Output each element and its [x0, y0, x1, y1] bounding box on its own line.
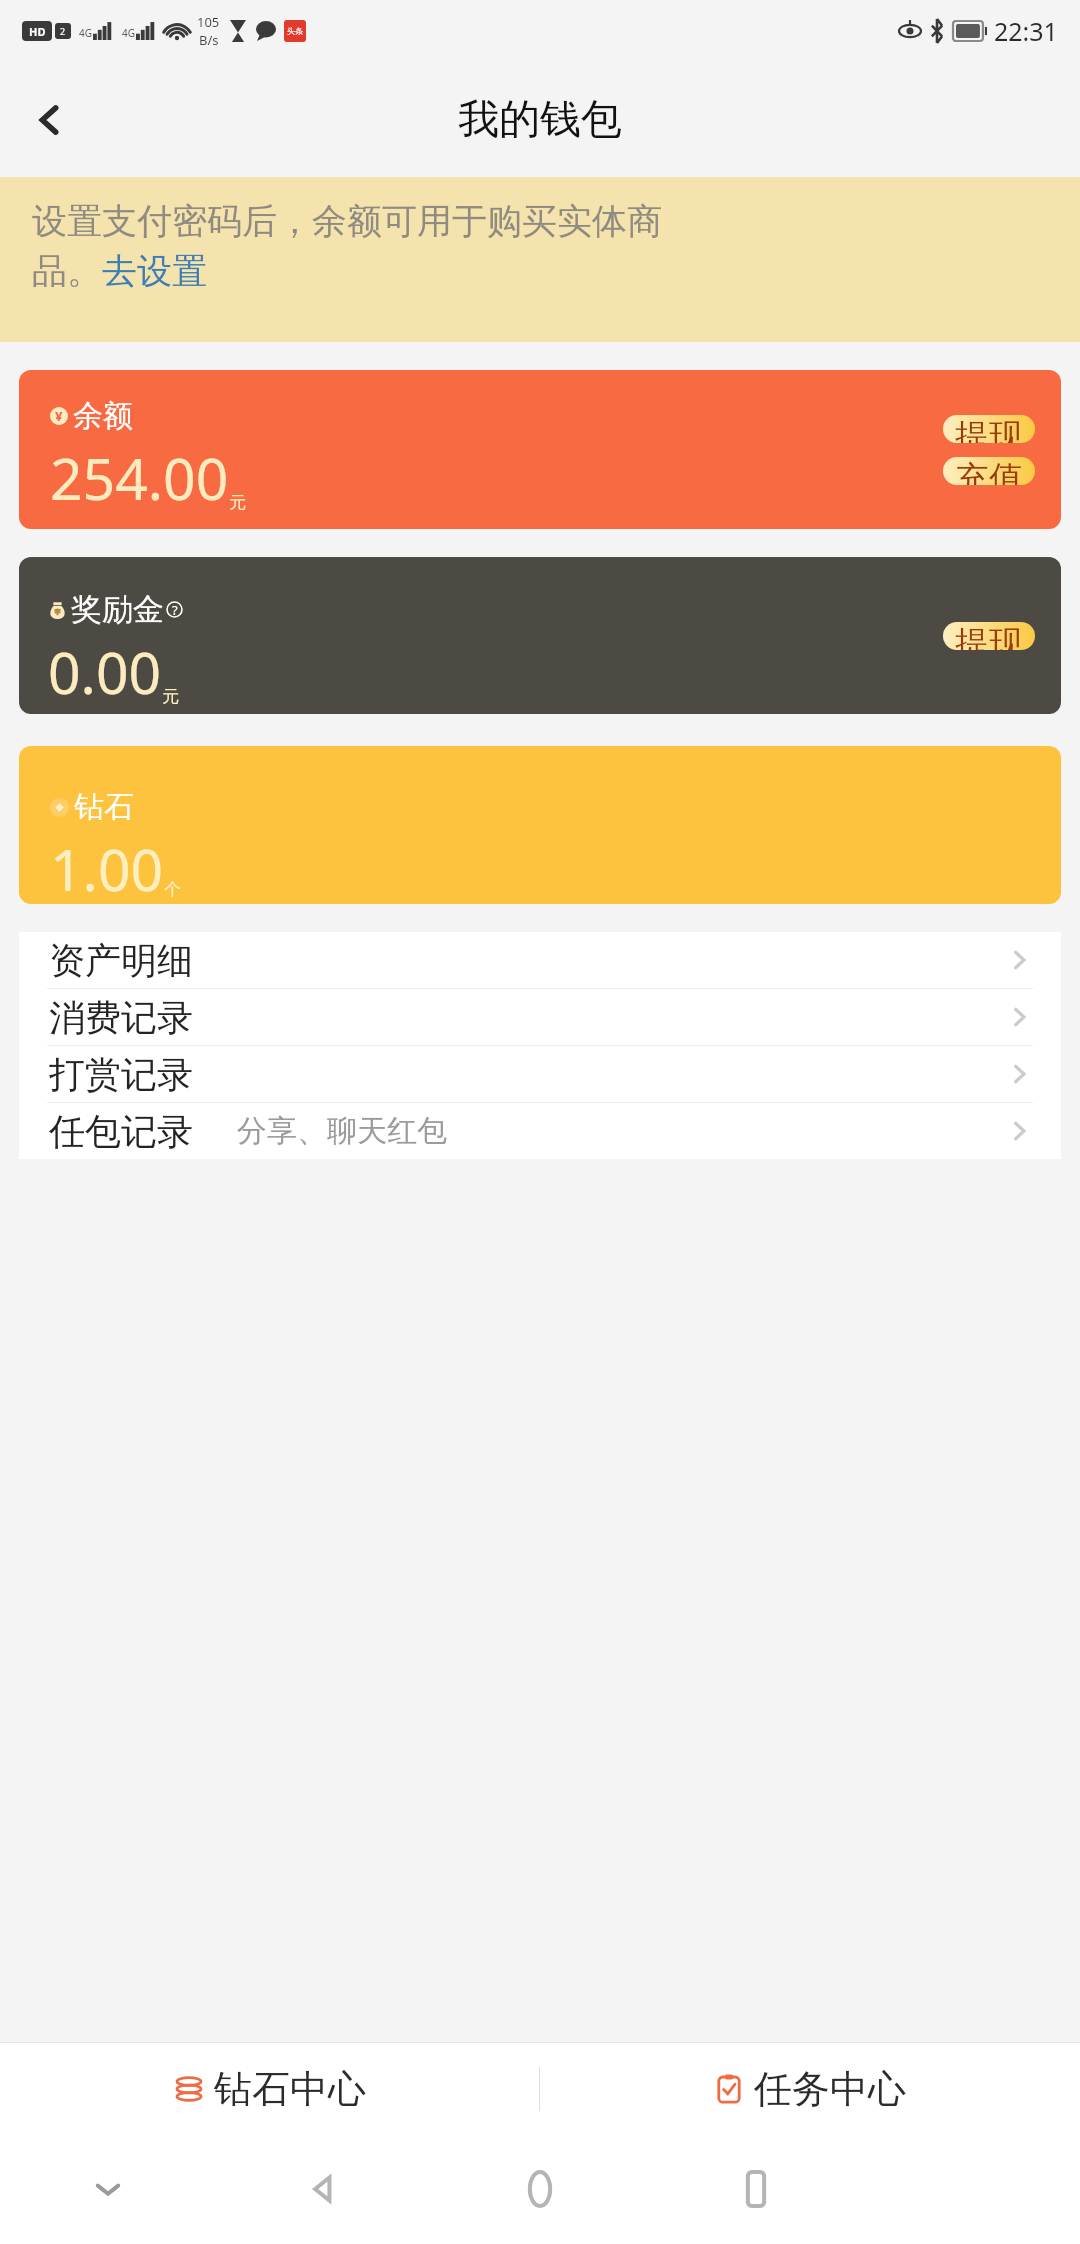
button[interactable]: 奖励金	[19, 557, 1061, 714]
button[interactable]: ¥	[19, 370, 1061, 529]
button[interactable]: 提现	[943, 415, 1035, 443]
button[interactable]: 钻石中心	[0, 2043, 539, 2134]
staticText: 元	[229, 492, 246, 513]
button[interactable]: Home	[432, 2134, 648, 2244]
staticText: 奖励金	[71, 590, 164, 629]
staticText: 提现	[955, 415, 1023, 443]
button[interactable]: Back	[216, 2134, 432, 2244]
staticText: 任包记录	[49, 1109, 193, 1154]
staticText: 品。	[32, 249, 102, 293]
button[interactable]: 消费记录	[19, 989, 1061, 1045]
staticText: 充值	[955, 457, 1023, 485]
staticText: HD	[29, 24, 46, 39]
button[interactable]: 任包记录	[19, 1103, 1061, 1159]
button[interactable]: Hide	[0, 2134, 216, 2244]
staticText: 个	[164, 879, 181, 900]
staticText: 0.00	[48, 633, 162, 711]
staticText: 去设置	[102, 249, 207, 293]
staticText: 提现	[955, 622, 1023, 650]
button[interactable]: 资产明细	[19, 932, 1061, 988]
button[interactable]: 钻石	[19, 746, 1061, 904]
staticText: 钻石中心	[214, 2065, 366, 2113]
staticText: 分享、聊天红包	[237, 1112, 447, 1150]
staticText: 头条	[287, 26, 303, 36]
button[interactable]: 设置支付密码后，余额可用于购买实体商	[0, 177, 1080, 342]
staticText: 钻石	[74, 788, 134, 826]
staticText: 打赏记录	[49, 1052, 193, 1097]
button[interactable]: 打赏记录	[19, 1046, 1061, 1102]
button[interactable]: Recents	[648, 2134, 864, 2244]
button[interactable]: 返回	[10, 80, 90, 160]
button[interactable]: 任务中心	[540, 2043, 1080, 2134]
staticText: 资产明细	[49, 938, 193, 983]
staticText: 4G	[122, 26, 135, 40]
staticText: 22:31	[994, 14, 1058, 48]
staticText: 任务中心	[754, 2065, 906, 2113]
staticText: 余额	[73, 397, 133, 435]
staticText: 1.00	[50, 830, 164, 904]
staticText: 我的钱包	[458, 94, 622, 146]
button[interactable]: 提现	[943, 622, 1035, 650]
staticText: 105	[197, 13, 220, 31]
staticText: 2	[60, 25, 66, 37]
staticText: 消费记录	[49, 995, 193, 1040]
staticText: 元	[162, 686, 179, 707]
staticText: ¥	[55, 407, 63, 425]
staticText: 设置支付密码后，余额可用于购买实体商	[32, 199, 662, 243]
button[interactable]: 充值	[943, 457, 1035, 485]
staticText: B/s	[199, 31, 219, 49]
staticText: 4G	[79, 26, 92, 40]
button[interactable]: 说明	[166, 601, 183, 618]
staticText: 254.00	[50, 439, 229, 517]
staticText: ?	[172, 601, 178, 618]
